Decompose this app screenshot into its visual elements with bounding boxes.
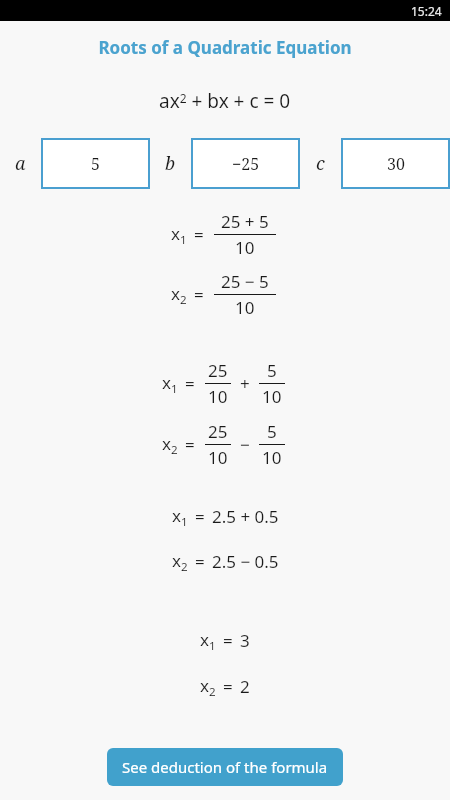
staticText: 2.5 − 0.5 xyxy=(212,550,279,573)
button[interactable]: 5 xyxy=(41,138,150,189)
staticText: c xyxy=(316,151,325,176)
staticText: x1 xyxy=(200,628,216,653)
staticText: = xyxy=(223,675,233,698)
staticText: 10 xyxy=(208,446,228,469)
staticText: 5 xyxy=(267,420,277,443)
staticText: a xyxy=(15,151,26,176)
staticText: = xyxy=(194,223,204,246)
staticText: Roots of a Quadratic Equation xyxy=(98,36,352,59)
staticText: 10 xyxy=(235,296,255,319)
staticText: 2 xyxy=(240,675,250,698)
staticText: 25 − 5 xyxy=(221,270,269,293)
staticText: = xyxy=(194,283,204,306)
staticText: 30 xyxy=(387,153,405,175)
staticText: 10 xyxy=(235,236,255,259)
button[interactable]: See deduction of the formula xyxy=(107,748,343,786)
staticText: = xyxy=(185,372,195,395)
staticText: 5 xyxy=(267,359,277,382)
staticText: ax2 + bx + c = 0 xyxy=(159,88,291,114)
staticText: 25 xyxy=(208,359,228,382)
button[interactable]: −25 xyxy=(191,138,300,189)
staticText: = xyxy=(185,433,195,456)
staticText: −25 xyxy=(232,153,260,175)
staticText: x2 xyxy=(162,432,178,457)
staticText: 2.5 + 0.5 xyxy=(212,505,279,528)
staticText: 15:24 xyxy=(411,3,442,19)
staticText: 10 xyxy=(262,446,282,469)
staticText: x1 xyxy=(172,504,188,529)
staticText: x2 xyxy=(171,282,187,307)
staticText: = xyxy=(195,505,205,528)
staticText: = xyxy=(223,629,233,652)
staticText: − xyxy=(240,433,250,456)
staticText: 25 + 5 xyxy=(221,210,269,233)
button[interactable]: 30 xyxy=(341,138,450,189)
staticText: See deduction of the formula xyxy=(122,757,328,777)
staticText: x2 xyxy=(200,674,216,699)
staticText: 3 xyxy=(240,629,250,652)
staticText: x1 xyxy=(171,222,187,247)
staticText: = xyxy=(195,550,205,573)
staticText: + xyxy=(240,372,250,395)
staticText: x1 xyxy=(162,371,178,396)
staticText: 5 xyxy=(91,153,100,175)
staticText: b xyxy=(165,151,176,176)
staticText: x2 xyxy=(172,549,188,574)
staticText: 10 xyxy=(208,385,228,408)
staticText: 25 xyxy=(208,420,228,443)
staticText: 10 xyxy=(262,385,282,408)
